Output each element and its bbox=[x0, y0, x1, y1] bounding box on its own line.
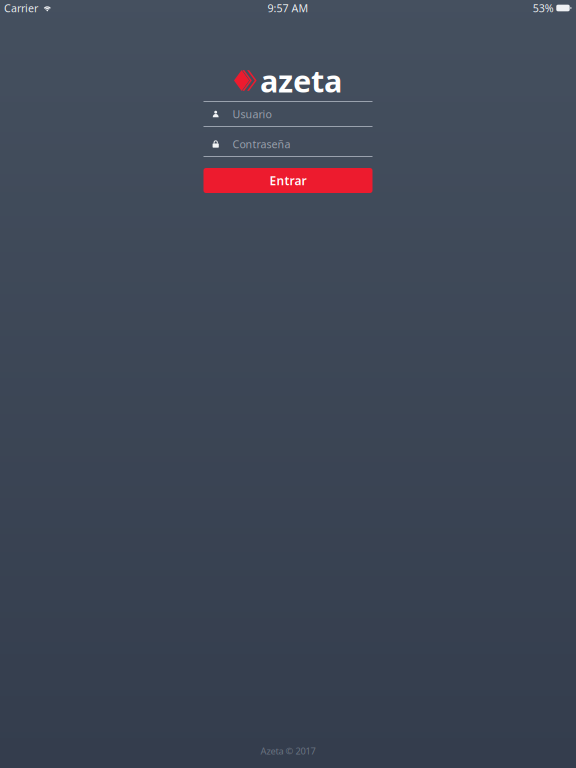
staticText: Usuario bbox=[232, 107, 271, 121]
staticText: Carrier bbox=[4, 1, 38, 15]
button[interactable]: Contraseña bbox=[203, 132, 372, 157]
button[interactable]: Entrar bbox=[203, 168, 372, 193]
button[interactable]: Usuario bbox=[203, 102, 372, 127]
staticText: Entrar bbox=[269, 172, 306, 188]
staticText: Contraseña bbox=[232, 137, 290, 151]
staticText: azeta bbox=[260, 60, 342, 101]
staticText: Azeta © 2017 bbox=[260, 745, 315, 757]
staticText: 53% bbox=[533, 1, 554, 15]
staticText: 9:57 AM bbox=[267, 1, 308, 15]
